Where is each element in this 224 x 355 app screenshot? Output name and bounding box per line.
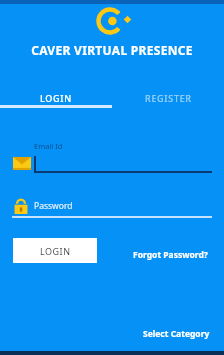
button[interactable]: LOGIN xyxy=(13,238,97,263)
staticText: LOGIN xyxy=(40,245,71,257)
staticText: REGISTER xyxy=(145,92,192,104)
button[interactable]: Forgot Password? xyxy=(131,247,210,263)
other: Email xyxy=(13,157,31,170)
staticText: Email Id xyxy=(34,141,63,151)
other: Password xyxy=(14,199,28,214)
staticText: LOGIN xyxy=(40,92,72,104)
staticText: Forgot Password? xyxy=(133,249,208,261)
button[interactable]: REGISTER xyxy=(112,88,224,108)
button[interactable]: LOGIN xyxy=(0,88,112,108)
staticText: CAVER VIRTUAL PRESENCE xyxy=(0,42,224,58)
button[interactable]: Select Category xyxy=(141,326,212,342)
staticText: Select Category xyxy=(143,328,210,340)
staticText: Password xyxy=(34,200,73,212)
